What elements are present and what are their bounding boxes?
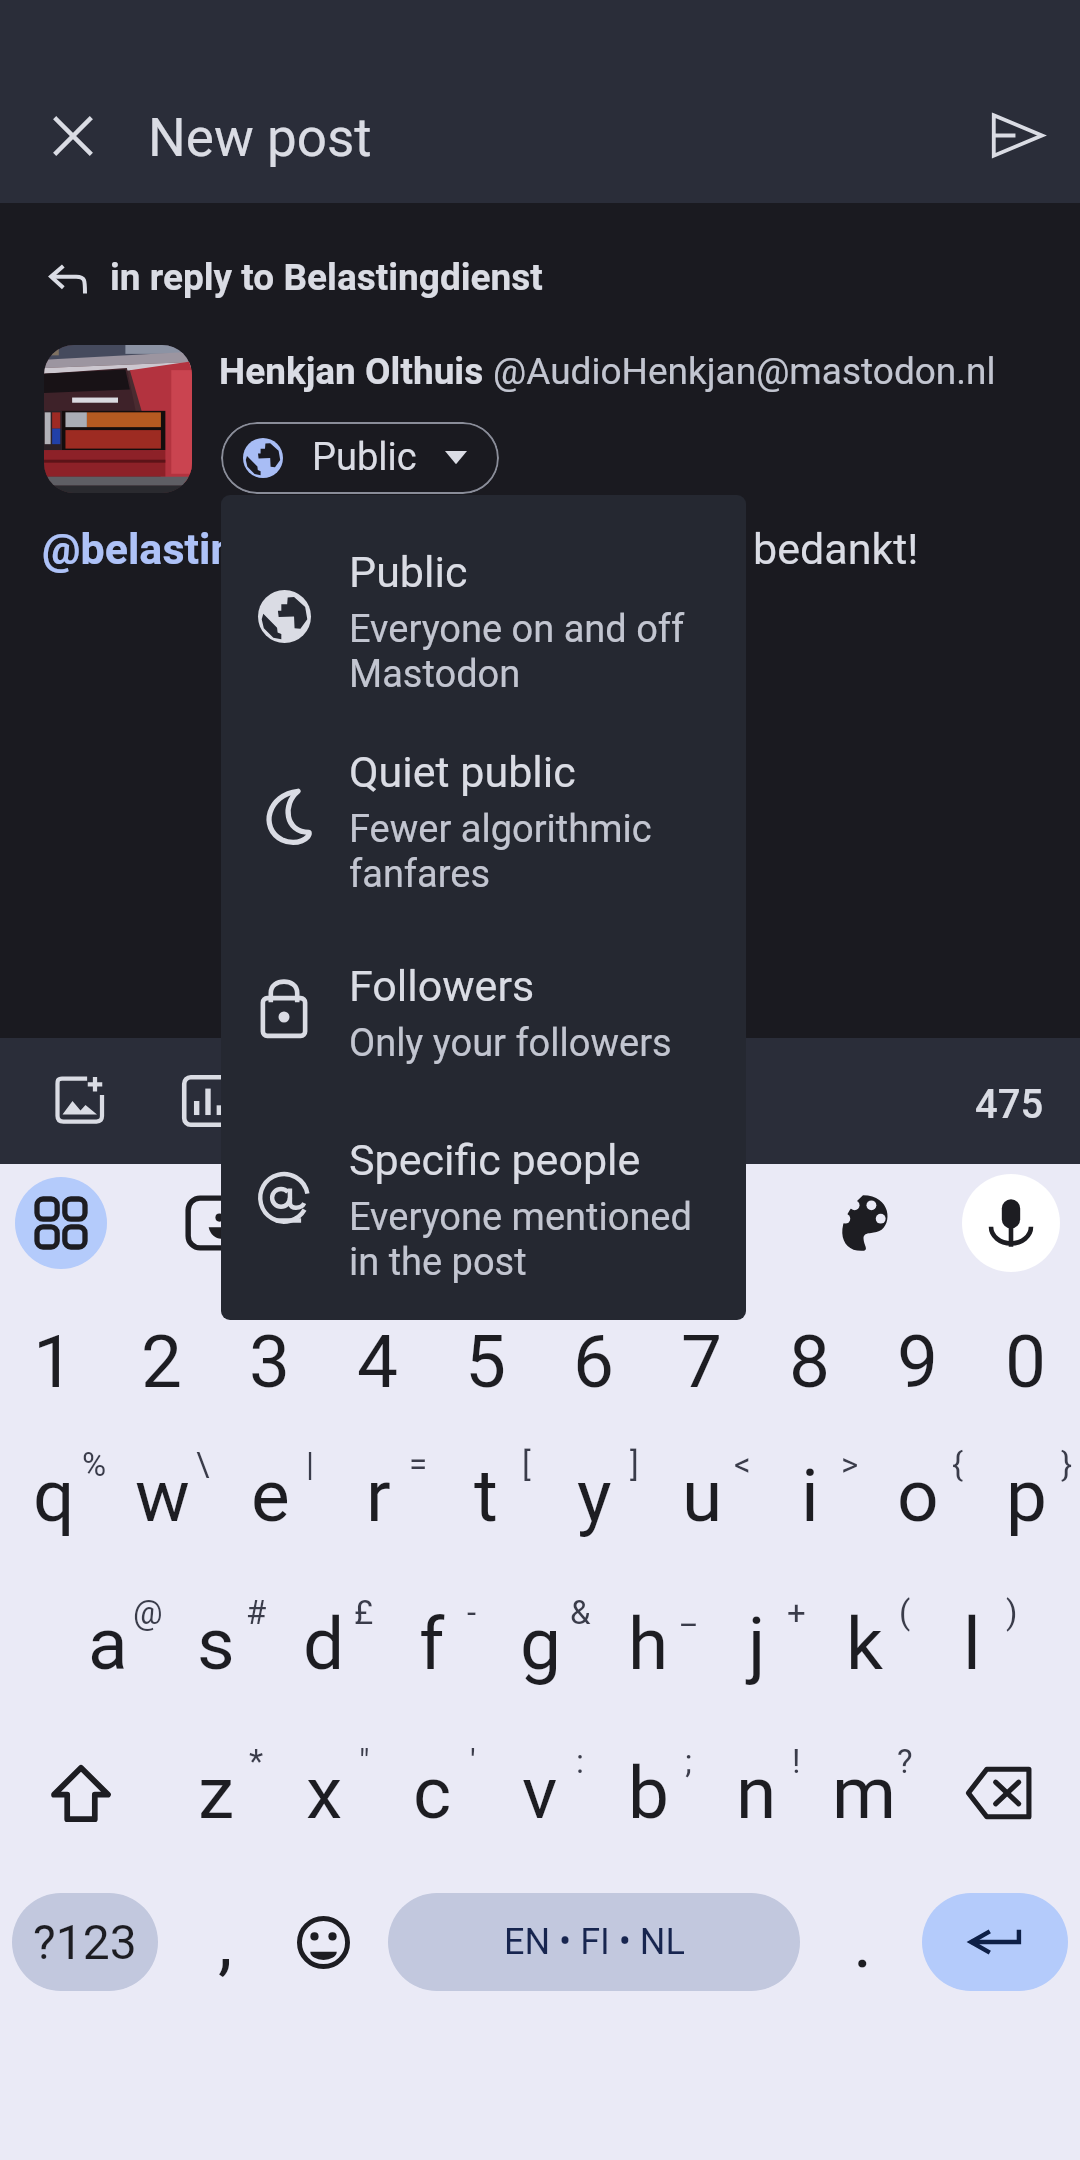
button[interactable]: e — [216, 1421, 324, 1571]
button[interactable]: d — [270, 1569, 378, 1719]
button[interactable]: EN • FI • NL — [388, 1893, 800, 1991]
staticText: Public — [312, 435, 417, 480]
button[interactable]: i — [756, 1421, 864, 1571]
staticText: 2 — [141, 1319, 183, 1405]
button[interactable]: v — [486, 1713, 594, 1873]
staticText: d — [303, 1601, 345, 1687]
button[interactable]: q — [0, 1421, 108, 1571]
button[interactable]: Shift — [0, 1713, 162, 1873]
staticText: m — [832, 1750, 897, 1836]
button[interactable]: 6 — [540, 1287, 648, 1437]
button[interactable]: n — [702, 1713, 810, 1873]
button[interactable]: y — [540, 1421, 648, 1571]
button[interactable]: 0 — [972, 1287, 1080, 1437]
staticText: @belastingdienst — [42, 524, 379, 574]
button[interactable]: 5 — [432, 1287, 540, 1437]
staticText: v — [522, 1750, 558, 1836]
staticText: s — [197, 1601, 235, 1687]
button[interactable]: Public — [221, 422, 499, 494]
staticText: ?123 — [33, 1914, 137, 1970]
button[interactable]: Apps — [15, 1177, 107, 1269]
button[interactable]: ?123 — [12, 1893, 158, 1991]
button[interactable]: k — [810, 1569, 918, 1719]
button[interactable]: 3 — [216, 1287, 324, 1437]
staticText: 4 — [357, 1319, 399, 1405]
button[interactable]: a — [54, 1569, 162, 1719]
staticText: z — [198, 1750, 235, 1836]
staticText: l — [963, 1601, 981, 1687]
staticText: EN • FI • NL — [504, 1921, 685, 1963]
staticText: - — [467, 1593, 477, 1632]
staticText: b — [628, 1750, 669, 1836]
staticText: o — [897, 1453, 939, 1539]
button[interactable]: Close — [29, 92, 117, 180]
button[interactable]: 4 — [324, 1287, 432, 1437]
staticText: < — [734, 1445, 751, 1484]
button[interactable]: 7 — [648, 1287, 756, 1437]
staticText: 1 — [33, 1319, 75, 1405]
staticText: £ — [354, 1593, 374, 1632]
button[interactable]: l — [918, 1569, 1026, 1719]
button[interactable]: m — [810, 1713, 918, 1873]
button[interactable]: r — [324, 1421, 432, 1571]
button[interactable]: Send — [971, 89, 1063, 181]
button[interactable]: u — [648, 1421, 756, 1571]
button[interactable]: h — [594, 1569, 702, 1719]
staticText: Quiet public — [349, 747, 576, 797]
button[interactable]: Stickers — [172, 1182, 254, 1264]
button[interactable]: j — [702, 1569, 810, 1719]
button[interactable]: Emoji — [274, 1893, 372, 1991]
staticText: 8 — [789, 1319, 831, 1405]
staticText: ) — [1006, 1593, 1018, 1632]
button[interactable]: p — [972, 1421, 1080, 1571]
button[interactable]: s — [162, 1569, 270, 1719]
staticText: 7 — [681, 1319, 723, 1405]
button[interactable]: Voice input — [962, 1174, 1060, 1272]
staticText: g — [520, 1601, 561, 1687]
staticText: Henkjan Olthuis — [219, 350, 493, 393]
button[interactable]: z — [162, 1713, 270, 1873]
staticText: t — [474, 1453, 498, 1539]
button[interactable]: . — [814, 1893, 912, 1991]
button[interactable]: , — [176, 1893, 274, 1991]
button[interactable]: Backspace — [918, 1713, 1080, 1873]
button[interactable]: t — [432, 1421, 540, 1571]
button[interactable]: x — [270, 1713, 378, 1873]
button[interactable]: g — [486, 1569, 594, 1719]
staticText: ! — [792, 1742, 801, 1781]
button[interactable]: o — [864, 1421, 972, 1571]
staticText: Everyone mentioned — [349, 1195, 692, 1240]
staticText: = — [409, 1445, 428, 1484]
button[interactable]: Add poll — [163, 1056, 253, 1146]
button[interactable]: f — [378, 1569, 486, 1719]
staticText: ; — [685, 1742, 692, 1781]
staticText: c — [413, 1750, 452, 1836]
staticText: u — [682, 1453, 723, 1539]
staticText: ( — [899, 1593, 911, 1632]
staticText: f — [419, 1601, 445, 1687]
button[interactable]: 8 — [756, 1287, 864, 1437]
staticText: > — [841, 1445, 859, 1484]
staticText: + — [787, 1593, 806, 1632]
staticText: % — [82, 1445, 107, 1484]
button[interactable]: Add image — [35, 1055, 125, 1145]
button[interactable]: w — [108, 1421, 216, 1571]
staticText: 0 — [1005, 1319, 1047, 1405]
staticText: Public — [349, 547, 468, 597]
button[interactable]: Theme — [822, 1182, 904, 1264]
staticText: k — [846, 1601, 883, 1687]
staticText: _ — [681, 1593, 696, 1632]
button[interactable]: 1 — [0, 1287, 108, 1437]
button[interactable]: c — [378, 1713, 486, 1873]
staticText: } — [1061, 1445, 1073, 1484]
button[interactable]: b — [594, 1713, 702, 1873]
button[interactable]: 2 — [108, 1287, 216, 1437]
staticText: Everyone on and off — [349, 607, 685, 652]
staticText: " — [359, 1742, 370, 1781]
staticText: Fewer algorithmic — [349, 807, 652, 852]
staticText: x — [306, 1750, 343, 1836]
button[interactable]: 9 — [864, 1287, 972, 1437]
staticText: 9 — [897, 1319, 939, 1405]
staticText: ] — [630, 1445, 639, 1484]
button[interactable]: Enter — [922, 1893, 1068, 1991]
